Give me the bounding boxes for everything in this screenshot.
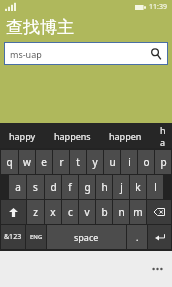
button[interactable]: s	[27, 175, 44, 199]
button[interactable]: u	[104, 150, 120, 174]
button[interactable]: ha	[151, 123, 172, 148]
button[interactable]: n	[113, 200, 129, 224]
staticText: y	[92, 155, 98, 169]
button[interactable]: t	[70, 150, 86, 174]
staticText: happens	[54, 130, 91, 142]
staticText: ms-uap	[10, 48, 42, 60]
staticText: w	[23, 155, 31, 169]
staticText: i	[128, 155, 131, 169]
staticText: x	[50, 205, 56, 219]
button[interactable]: Search	[144, 42, 168, 65]
staticText: 11:39	[149, 2, 167, 12]
staticText: j	[120, 180, 123, 194]
staticText: q	[6, 155, 13, 169]
staticText: k	[135, 180, 141, 194]
staticText: 查找博主	[6, 17, 74, 38]
staticText: z	[33, 205, 38, 219]
button[interactable]: p	[155, 150, 171, 174]
button[interactable]: h	[96, 175, 112, 199]
staticText: u	[109, 155, 116, 169]
staticText: happy	[9, 130, 36, 142]
button[interactable]: ENG	[26, 225, 46, 249]
button[interactable]: q	[1, 150, 18, 174]
button[interactable]: a	[9, 175, 26, 199]
button[interactable]: happy	[0, 123, 45, 148]
staticText: s	[33, 180, 38, 194]
staticText: e	[41, 155, 47, 169]
button[interactable]: z	[27, 200, 44, 224]
button[interactable]: f	[62, 175, 78, 199]
staticText: f	[68, 180, 72, 194]
button[interactable]: r	[53, 150, 69, 174]
button[interactable]: g	[79, 175, 95, 199]
button[interactable]: b	[96, 200, 112, 224]
staticText: d	[50, 180, 57, 194]
button[interactable]: m	[130, 200, 146, 224]
staticText: b	[101, 205, 108, 219]
staticText: p	[160, 155, 167, 169]
button[interactable]: v	[79, 200, 95, 224]
staticText: a	[15, 180, 21, 194]
staticText: g	[84, 180, 91, 194]
button[interactable]: l	[147, 175, 163, 199]
button[interactable]: space	[47, 225, 126, 249]
button[interactable]: &123	[1, 225, 25, 249]
button[interactable]: ms-uap	[4, 42, 168, 65]
staticText: m	[133, 205, 143, 219]
staticText: .	[136, 231, 139, 243]
button[interactable]: w	[19, 150, 35, 174]
button[interactable]: .	[127, 225, 147, 249]
button[interactable]: Enter	[148, 225, 171, 249]
staticText: r	[59, 155, 64, 169]
button[interactable]: j	[113, 175, 129, 199]
button[interactable]: e	[36, 150, 52, 174]
button[interactable]: Backspace	[147, 200, 171, 224]
button[interactable]: i	[121, 150, 137, 174]
staticText: n	[118, 205, 125, 219]
button[interactable]: y	[87, 150, 103, 174]
staticText: o	[143, 155, 150, 169]
button[interactable]: More options	[142, 251, 172, 287]
staticText: t	[76, 155, 80, 169]
button[interactable]: x	[45, 200, 61, 224]
button[interactable]: happens	[45, 123, 100, 148]
button[interactable]: o	[138, 150, 154, 174]
staticText: ENG	[30, 233, 43, 241]
staticText: ha	[160, 124, 163, 148]
button[interactable]: k	[130, 175, 146, 199]
button[interactable]: Shift	[1, 200, 26, 224]
button[interactable]: c	[62, 200, 78, 224]
staticText: c	[68, 205, 73, 219]
staticText: space	[74, 231, 99, 243]
staticText: l	[154, 180, 157, 194]
staticText: &123	[4, 232, 22, 242]
staticText: v	[84, 205, 90, 219]
button[interactable]: d	[45, 175, 61, 199]
button[interactable]: happen	[100, 123, 151, 148]
staticText: happen	[109, 130, 142, 142]
staticText: h	[101, 180, 108, 194]
